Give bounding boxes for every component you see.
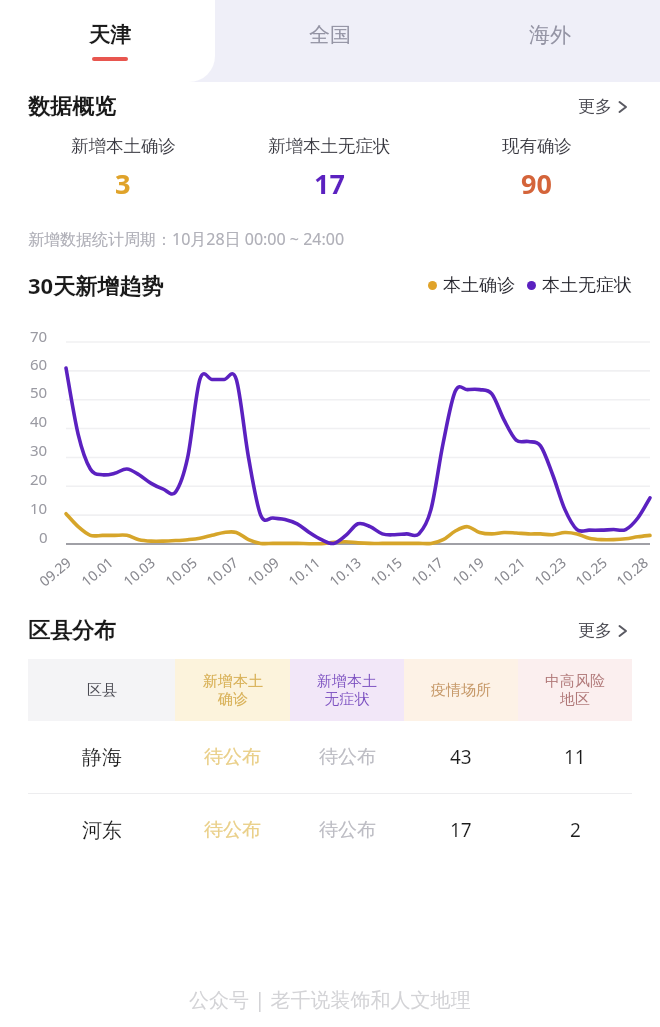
button[interactable]: 河东 <box>28 794 632 866</box>
staticText: 10.17 <box>407 553 447 590</box>
staticText: 11 <box>564 744 586 770</box>
staticText: 公众号 | 老千说装饰和人文地理 <box>189 986 471 1013</box>
staticText: 本土无症状 <box>542 274 632 297</box>
staticText: 中高风险 地区 <box>545 672 605 709</box>
staticText: 现有确诊 <box>502 135 572 157</box>
staticText: 10.25 <box>571 553 611 590</box>
staticText: 2 <box>570 817 581 843</box>
staticText: 10.01 <box>77 553 117 590</box>
staticText: 10.13 <box>325 553 365 590</box>
staticText: 30 <box>30 440 48 460</box>
staticText: 3 <box>115 165 131 202</box>
staticText: 0 <box>39 527 48 547</box>
staticText: 静海 <box>82 745 122 770</box>
staticText: 待公布 <box>204 818 261 842</box>
staticText: 40 <box>30 411 48 431</box>
staticText: 10.23 <box>530 553 570 590</box>
staticText: 天津 <box>89 22 131 48</box>
staticText: 17 <box>314 165 345 202</box>
staticText: 10.07 <box>202 553 242 590</box>
staticText: 20 <box>30 469 48 489</box>
staticText: 全国 <box>309 22 351 48</box>
staticText: 10.19 <box>448 553 488 590</box>
staticText: 新增本土无症状 <box>268 135 391 157</box>
staticText: 河东 <box>82 818 122 843</box>
staticText: 10.21 <box>489 553 529 590</box>
staticText: 新增本土确诊 <box>71 135 176 157</box>
staticText: 10.11 <box>284 553 324 590</box>
button[interactable]: 更多 <box>574 616 632 645</box>
staticText: 更多 <box>578 620 612 641</box>
staticText: 10.15 <box>366 553 406 590</box>
staticText: 10.03 <box>119 553 159 590</box>
button[interactable]: 天津 <box>0 0 220 82</box>
staticText: 10.05 <box>161 553 201 590</box>
staticText: 10.09 <box>243 553 283 590</box>
staticText: 30天新增趋势 <box>28 270 164 300</box>
staticText: 17 <box>450 817 472 843</box>
staticText: 本土确诊 <box>443 274 515 297</box>
button[interactable]: 全国 <box>220 0 440 82</box>
staticText: 区县分布 <box>28 617 116 645</box>
staticText: 43 <box>450 744 472 770</box>
staticText: 90 <box>521 165 552 202</box>
staticText: 10.28 <box>612 553 652 590</box>
staticText: 70 <box>30 326 48 346</box>
staticText: 海外 <box>529 22 571 48</box>
button[interactable]: 现有确诊 <box>433 135 640 202</box>
button[interactable]: 新增本土确诊 <box>20 135 226 202</box>
button[interactable]: 静海 <box>28 721 632 793</box>
staticText: 疫情场所 <box>431 681 491 700</box>
staticText: 10 <box>30 498 48 518</box>
staticText: 待公布 <box>319 745 376 769</box>
staticText: 待公布 <box>319 818 376 842</box>
staticText: 09.29 <box>35 553 75 590</box>
staticText: 数据概览 <box>28 93 116 121</box>
staticText: 待公布 <box>204 745 261 769</box>
button[interactable]: 更多 <box>574 92 632 121</box>
staticText: 新增本土 无症状 <box>317 672 377 709</box>
staticText: 区县 <box>87 681 117 700</box>
staticText: 更多 <box>578 96 612 117</box>
staticText: 新增数据统计周期：10月28日 00:00 ~ 24:00 <box>28 228 345 250</box>
button[interactable]: 海外 <box>440 0 660 82</box>
button[interactable]: 新增本土无症状 <box>226 135 433 202</box>
staticText: 60 <box>30 354 48 374</box>
staticText: 新增本土 确诊 <box>203 672 263 709</box>
staticText: 50 <box>30 382 48 402</box>
